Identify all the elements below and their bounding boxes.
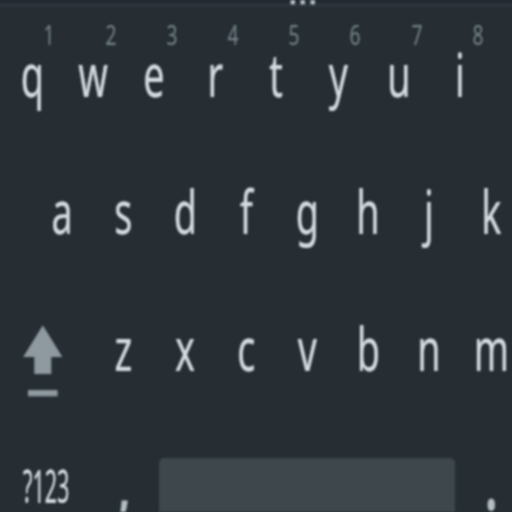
staticText: y bbox=[328, 33, 348, 115]
button[interactable]: Shift bbox=[0, 290, 94, 427]
staticText: 4 bbox=[227, 16, 239, 53]
staticText: j bbox=[424, 170, 434, 252]
staticText: k bbox=[481, 170, 502, 252]
staticText: v bbox=[297, 307, 317, 389]
staticText: x bbox=[175, 307, 195, 389]
staticText: i bbox=[455, 33, 465, 115]
staticText: q bbox=[21, 33, 44, 115]
button[interactable] bbox=[0, 427, 94, 512]
staticText: b bbox=[357, 307, 380, 389]
staticText: z bbox=[114, 307, 132, 389]
staticText: 6 bbox=[349, 16, 361, 53]
staticText: ?123 bbox=[23, 454, 69, 512]
staticText: a bbox=[51, 170, 73, 252]
staticText: 8 bbox=[472, 16, 484, 53]
staticText: . bbox=[483, 412, 499, 512]
staticText: w bbox=[78, 33, 108, 115]
staticText: g bbox=[296, 170, 319, 252]
staticText: s bbox=[114, 170, 132, 252]
staticText: 1 bbox=[43, 16, 55, 53]
staticText: 7 bbox=[411, 16, 423, 53]
staticText: d bbox=[174, 170, 197, 252]
staticText: , bbox=[116, 413, 132, 512]
staticText: 2 bbox=[105, 16, 117, 53]
staticText: e bbox=[143, 33, 165, 115]
staticText: t bbox=[269, 33, 283, 115]
staticText: r bbox=[207, 33, 223, 115]
staticText: m bbox=[473, 307, 509, 389]
staticText: u bbox=[387, 33, 411, 115]
staticText: f bbox=[240, 170, 253, 252]
staticText: 3 bbox=[166, 16, 178, 53]
staticText: c bbox=[237, 307, 255, 389]
staticText: h bbox=[356, 170, 380, 252]
staticText: n bbox=[417, 307, 441, 389]
staticText: 5 bbox=[288, 16, 300, 53]
